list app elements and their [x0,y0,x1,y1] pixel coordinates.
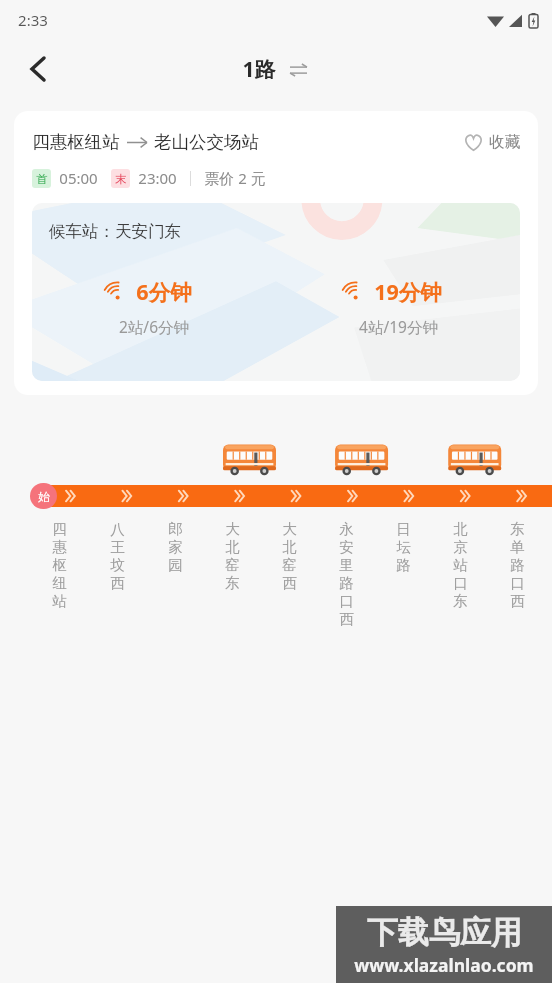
staticText: 西 [339,610,354,628]
staticText: 王 [110,538,125,556]
staticText: 家 [168,538,183,556]
staticText: 里 [339,556,354,574]
staticText: 四惠枢纽站 [32,131,120,153]
staticText: 四 [52,520,67,538]
staticText: 口 [510,574,525,592]
button[interactable]: 19分钟 [276,277,520,337]
staticText: 枢 [52,556,67,574]
staticText: 05:00 [59,168,98,188]
staticText: 京 [453,538,468,556]
staticText: 口 [339,592,354,610]
button[interactable]: 四惠枢纽站 [14,111,538,395]
staticText: 北 [225,538,240,556]
staticText: 候车站：天安门东 [49,221,181,242]
button[interactable]: 候车站：天安门东 [32,203,520,381]
staticText: 郎 [168,520,183,538]
staticText: 西 [510,592,525,610]
staticText: 大 [225,520,240,538]
staticText: 4站/19分钟 [359,316,438,337]
staticText: 路 [339,574,354,592]
staticText: 2站/6分钟 [119,316,189,337]
staticText: 19分钟 [374,277,442,306]
staticText: 北 [453,520,468,538]
staticText: 单 [510,538,525,556]
staticText: 西 [110,574,125,592]
staticText: 窑 [282,556,297,574]
staticText: 2:33 [18,10,48,30]
staticText: 站 [52,592,67,610]
staticText: 北 [282,538,297,556]
staticText: 23:00 [138,168,177,188]
staticText: 大 [282,520,297,538]
staticText: 园 [168,556,183,574]
staticText: 西 [282,574,297,592]
button[interactable]: 收藏 [464,132,520,152]
staticText: 坟 [110,556,125,574]
staticText: 老山公交场站 [154,131,259,153]
staticText: 纽 [52,574,67,592]
staticText: 东 [510,520,525,538]
staticText: 6分钟 [136,277,192,306]
staticText: 八 [110,520,125,538]
button[interactable]: Back [14,45,62,93]
staticText: 惠 [52,538,67,556]
staticText: 东 [225,574,240,592]
button[interactable]: 6分钟 [32,277,276,337]
staticText: 窑 [225,556,240,574]
staticText: 收藏 [489,132,520,152]
staticText: 永 [339,520,354,538]
staticText: 站 [453,556,468,574]
staticText: 安 [339,538,354,556]
staticText: 日 [396,520,411,538]
staticText: 路 [396,556,411,574]
staticText: 票价 2 元 [204,168,266,188]
staticText: 口 [453,574,468,592]
staticText: 下载鸟应用 [367,913,522,952]
button[interactable]: Switch direction [286,58,310,82]
staticText: 末 [115,172,127,186]
staticText: 首 [36,172,48,186]
staticText: 坛 [396,538,411,556]
staticText: 路 [510,556,525,574]
staticText: 1路 [242,55,276,84]
staticText: 始 [38,489,50,504]
button[interactable]: 始 [30,483,57,509]
staticText: 东 [453,592,468,610]
staticText: www.xlazalnlao.com [354,953,534,977]
